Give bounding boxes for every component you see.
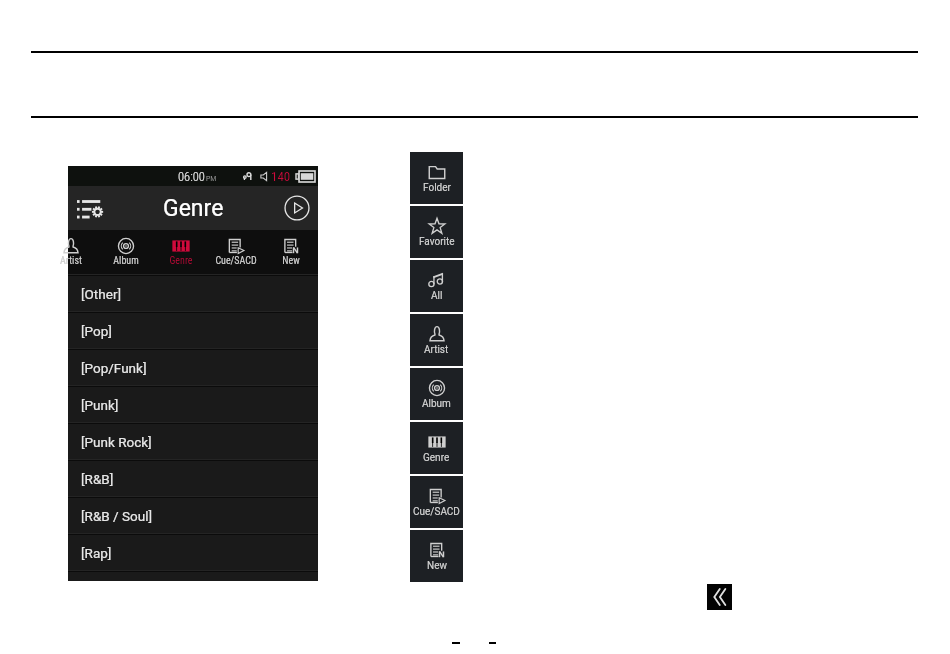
button[interactable]: Previous page bbox=[707, 584, 732, 610]
button[interactable]: Artist bbox=[44, 230, 98, 274]
staticText: 140 bbox=[271, 169, 291, 184]
button[interactable]: List options bbox=[75, 191, 105, 225]
button[interactable]: [Pop/Funk] bbox=[68, 348, 318, 385]
staticText: Cue/SACD bbox=[215, 255, 257, 267]
button[interactable]: Genre bbox=[410, 422, 463, 474]
staticText: Favorite bbox=[419, 236, 455, 248]
button[interactable]: Artist bbox=[410, 314, 463, 366]
staticText: Folder bbox=[423, 182, 451, 194]
staticText: [R&B / Soul] bbox=[81, 508, 152, 524]
staticText: Genre bbox=[423, 452, 450, 464]
staticText: Genre bbox=[169, 255, 193, 267]
staticText: PM bbox=[206, 174, 217, 183]
button[interactable]: [Rap] bbox=[68, 533, 318, 570]
staticText: All bbox=[431, 290, 443, 302]
button[interactable]: Favorite bbox=[410, 206, 463, 258]
button[interactable]: Play bbox=[281, 192, 313, 224]
staticText: [Other] bbox=[81, 286, 122, 302]
staticText: [Rap] bbox=[81, 545, 112, 561]
button[interactable]: [R&B / Soul] bbox=[68, 496, 318, 533]
staticText: New bbox=[427, 560, 447, 572]
staticText: New bbox=[282, 255, 300, 267]
button[interactable]: Genre bbox=[154, 230, 208, 274]
staticText: [Pop/Funk] bbox=[81, 360, 147, 376]
button[interactable]: Cue/SACD bbox=[410, 476, 463, 528]
button[interactable] bbox=[68, 570, 318, 581]
staticText: [R&B] bbox=[81, 471, 114, 487]
button[interactable]: Album bbox=[99, 230, 153, 274]
staticText: [Pop] bbox=[81, 323, 112, 339]
button[interactable]: [R&B] bbox=[68, 459, 318, 496]
button[interactable]: All bbox=[410, 260, 463, 312]
staticText: Cue/SACD bbox=[413, 506, 460, 518]
button[interactable]: Folder bbox=[410, 152, 463, 204]
button[interactable]: New bbox=[264, 230, 318, 274]
staticText: [Punk Rock] bbox=[81, 434, 152, 450]
button[interactable]: Cue/SACD bbox=[209, 230, 263, 274]
button[interactable]: Album bbox=[410, 368, 463, 420]
staticText: Artist bbox=[60, 255, 82, 267]
staticText: Album bbox=[113, 255, 139, 267]
staticText: Album bbox=[422, 398, 451, 410]
button[interactable]: New bbox=[410, 530, 463, 582]
staticText: Genre bbox=[163, 195, 224, 222]
staticText: [Punk] bbox=[81, 397, 119, 413]
button[interactable]: [Punk Rock] bbox=[68, 422, 318, 459]
button[interactable]: [Pop] bbox=[68, 311, 318, 348]
button[interactable]: [Punk] bbox=[68, 385, 318, 422]
button[interactable]: [Other] bbox=[68, 274, 318, 311]
staticText: 06:00 bbox=[178, 169, 205, 184]
staticText: Artist bbox=[424, 344, 449, 356]
